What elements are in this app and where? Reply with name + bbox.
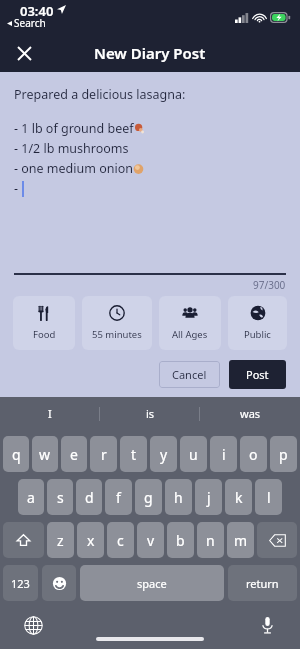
staticText: 55 minutes [92, 328, 142, 341]
button[interactable]: e [61, 436, 87, 472]
staticText: j [207, 488, 211, 507]
button[interactable]: k [225, 479, 252, 515]
staticText: z [57, 531, 64, 550]
staticText: d [85, 488, 94, 507]
staticText: e [70, 445, 78, 464]
button[interactable]: v [137, 522, 164, 558]
staticText: Food [33, 328, 56, 341]
button[interactable]: i [210, 436, 237, 472]
button[interactable]: is [100, 397, 200, 430]
button[interactable]: Backspace [257, 522, 297, 558]
button[interactable]: h [165, 479, 192, 515]
button[interactable]: Food [13, 296, 75, 350]
button[interactable]: q [3, 436, 29, 472]
staticText: 123 [11, 576, 30, 591]
button[interactable]: t [120, 436, 147, 472]
button[interactable]: d [76, 479, 102, 515]
button[interactable]: Public [228, 296, 287, 350]
staticText: Cancel [172, 367, 207, 382]
button[interactable]: Shift [3, 522, 44, 558]
button[interactable]: return [228, 565, 297, 601]
button[interactable]: y [150, 436, 177, 472]
staticText: - [14, 180, 19, 197]
button[interactable]: Cancel [159, 361, 220, 388]
button[interactable]: Voice input [254, 612, 280, 638]
staticText: x [87, 531, 95, 550]
button[interactable]: b [167, 522, 194, 558]
staticText: l [267, 488, 271, 507]
staticText: c [117, 531, 124, 550]
button[interactable]: All Ages [159, 296, 221, 350]
button[interactable]: f [105, 479, 132, 515]
staticText: p [279, 445, 288, 464]
button[interactable]: Close [8, 37, 40, 69]
staticText: Post [246, 367, 269, 382]
button[interactable]: p [270, 436, 297, 472]
button[interactable]: w [32, 436, 58, 472]
button[interactable]: x [77, 522, 104, 558]
button[interactable]: Change keyboard [20, 612, 46, 638]
button[interactable]: space [80, 565, 224, 601]
staticText: r [101, 445, 107, 464]
staticText: All Ages [172, 328, 208, 341]
button[interactable]: z [47, 522, 74, 558]
staticText: t [131, 445, 137, 464]
button[interactable]: a [18, 479, 44, 515]
button[interactable]: g [135, 479, 162, 515]
button[interactable]: j [195, 479, 222, 515]
staticText: g [144, 488, 153, 507]
staticText: was [240, 406, 261, 421]
staticText: m [234, 531, 248, 550]
staticText: Search [14, 16, 46, 30]
staticText: k [235, 488, 243, 507]
staticText: u [189, 445, 198, 464]
button[interactable]: 123 [3, 565, 38, 601]
button[interactable]: c [107, 522, 134, 558]
button[interactable]: r [90, 436, 117, 472]
staticText: y [160, 445, 168, 464]
staticText: 97/300 [253, 278, 286, 292]
staticText: i [222, 445, 226, 464]
staticText: I [48, 406, 52, 421]
staticText: w [39, 445, 51, 464]
staticText: n [206, 531, 215, 550]
staticText: v [147, 531, 155, 550]
button[interactable]: s [47, 479, 73, 515]
button[interactable]: was [200, 397, 300, 430]
staticText: Public [244, 328, 271, 341]
button[interactable]: n [197, 522, 224, 558]
staticText: h [174, 488, 183, 507]
button[interactable]: I [0, 397, 100, 430]
staticText: New Diary Post [94, 43, 206, 63]
staticText: a [27, 488, 35, 507]
button[interactable]: l [255, 479, 282, 515]
staticText: return [246, 576, 279, 591]
staticText: 03:40 [20, 2, 54, 20]
staticText: o [249, 445, 258, 464]
staticText: s [57, 488, 64, 507]
button[interactable]: o [240, 436, 267, 472]
staticText: b [176, 531, 185, 550]
button[interactable]: Emoji [42, 565, 76, 601]
staticText: - one medium onion [14, 160, 133, 177]
staticText: q [12, 445, 21, 464]
button[interactable]: u [180, 436, 207, 472]
staticText: - 1 lb of ground beef [14, 120, 134, 137]
staticText: Prepared a delicious lasagna: [14, 86, 186, 103]
staticText: space [137, 576, 167, 591]
staticText: is [146, 406, 155, 421]
staticText: f [116, 488, 121, 507]
staticText: - 1/2 lb mushrooms [14, 140, 129, 157]
button[interactable]: Post [229, 360, 286, 389]
button[interactable]: m [227, 522, 254, 558]
button[interactable]: 55 minutes [82, 296, 152, 350]
